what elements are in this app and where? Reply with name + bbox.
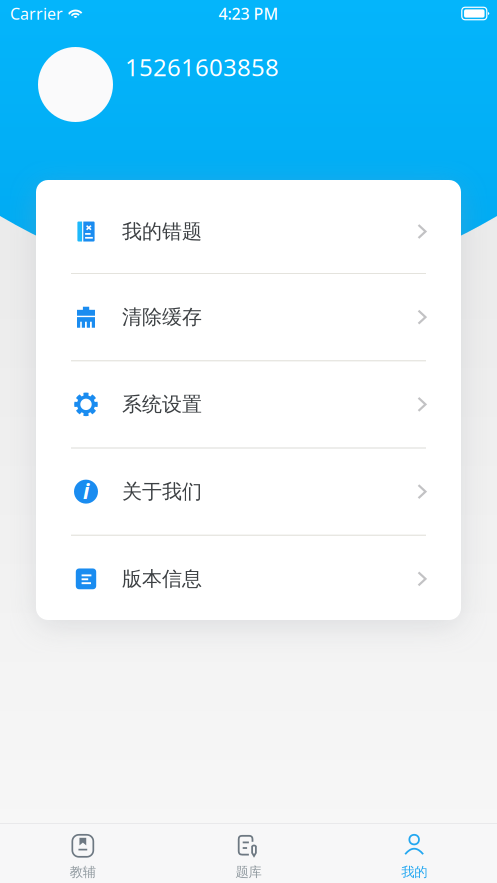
staticText: 教辅	[70, 864, 96, 880]
staticText: 题库	[235, 864, 261, 880]
staticText: 我的错题	[122, 219, 202, 244]
button[interactable]: 我的错题	[36, 178, 461, 273]
button[interactable]: 题库	[166, 820, 331, 883]
staticText: 清除缓存	[122, 305, 202, 329]
button[interactable]: 我的	[331, 820, 497, 883]
staticText: i	[83, 476, 89, 505]
staticText: 4:23 PM	[218, 3, 278, 24]
button[interactable]: 系统设置	[36, 361, 461, 447]
button[interactable]: 清除缓存	[36, 274, 461, 360]
button[interactable]: i	[36, 448, 461, 535]
staticText: Carrier	[10, 3, 63, 24]
button[interactable]: 版本信息	[36, 536, 461, 622]
staticText: 15261603858	[125, 51, 279, 83]
button[interactable]: 教辅	[0, 820, 166, 883]
staticText: 关于我们	[122, 479, 202, 504]
staticText: 版本信息	[122, 567, 202, 591]
staticText: 我的	[401, 864, 427, 880]
staticText: 系统设置	[122, 392, 202, 417]
